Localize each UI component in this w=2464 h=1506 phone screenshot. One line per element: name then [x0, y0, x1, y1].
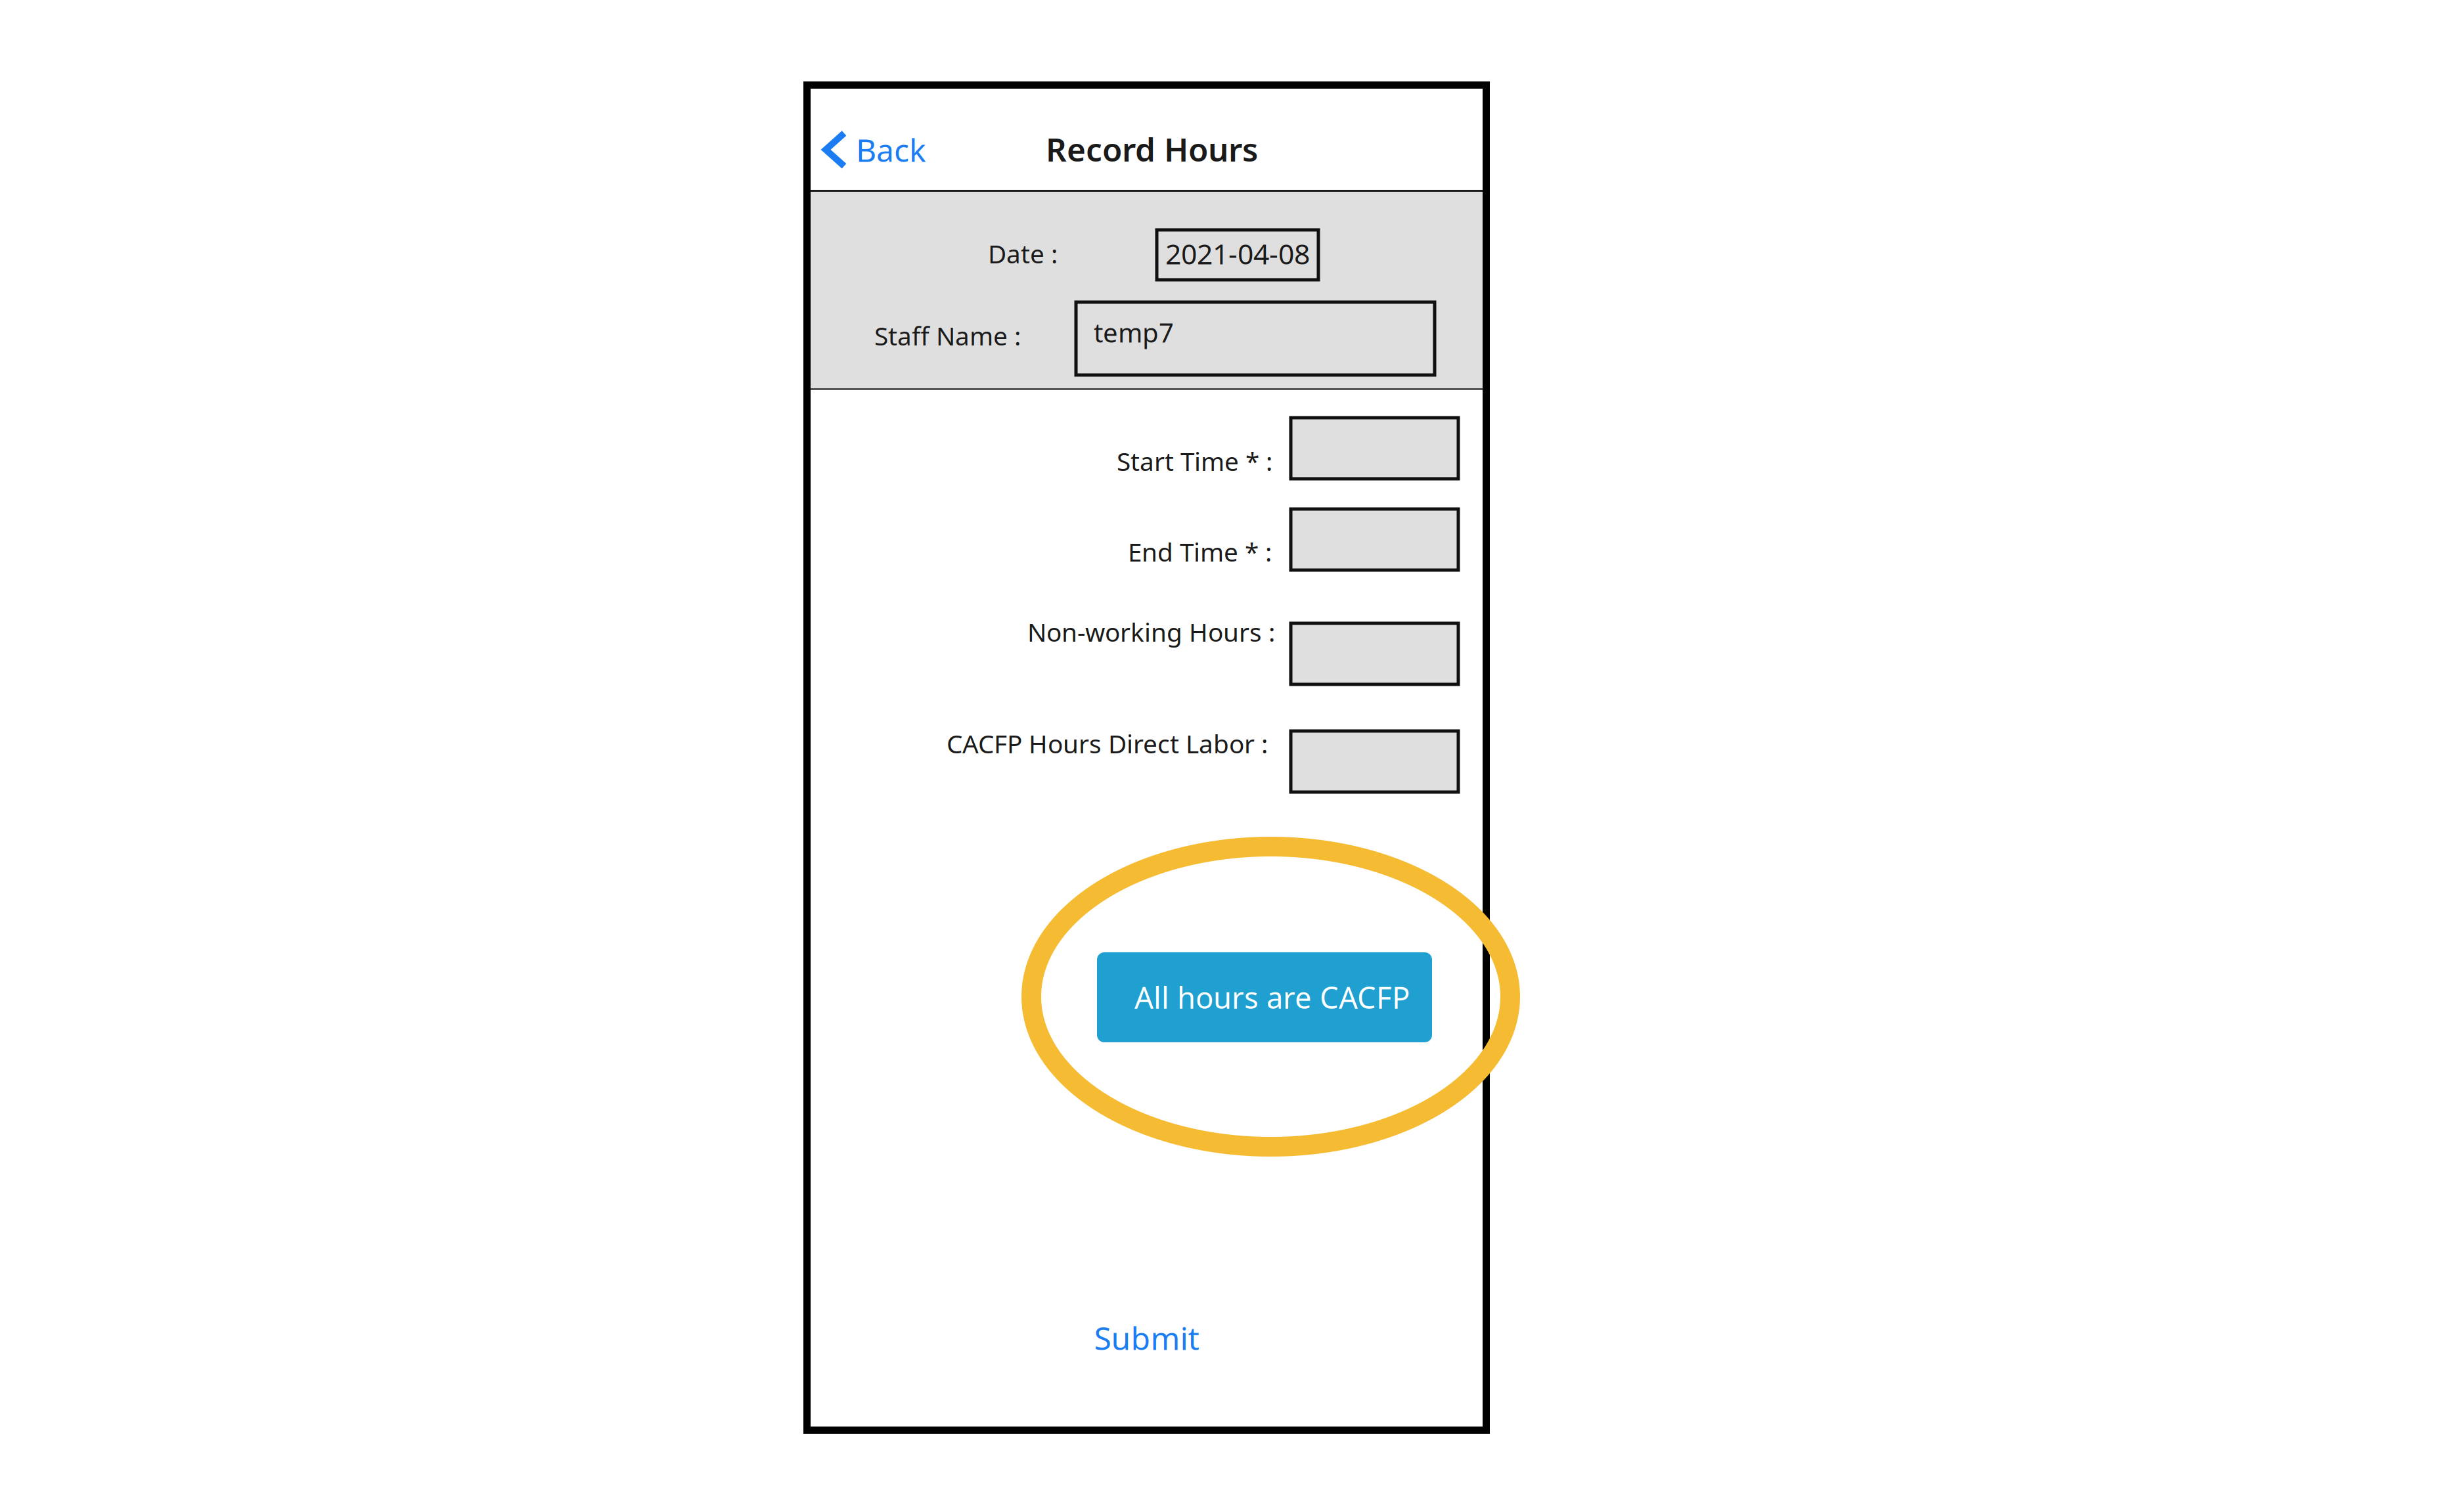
staticText: CACFP Hours Direct Labor :	[947, 727, 1268, 760]
button[interactable]: Non-working Hours :	[1291, 623, 1458, 684]
staticText: temp7	[1094, 315, 1174, 350]
staticText: Submit	[1094, 1317, 1199, 1359]
button[interactable]: Start Time * :	[1291, 418, 1458, 479]
staticText: Record Hours	[1046, 128, 1258, 171]
button[interactable]: All hours are CACFP	[1097, 952, 1432, 1042]
button[interactable]: Submit	[811, 1302, 1483, 1374]
staticText: Start Time * :	[1117, 444, 1272, 478]
staticText: Non-working Hours :	[1027, 615, 1275, 649]
staticText: All hours are CACFP	[1134, 977, 1410, 1017]
staticText: 2021-04-08	[1165, 235, 1310, 272]
button[interactable]: Staff Name	[1076, 302, 1435, 375]
staticText: End Time * :	[1128, 535, 1272, 569]
staticText: Date :	[988, 237, 1058, 270]
staticText: Back	[856, 129, 926, 171]
button[interactable]: End Time * :	[1291, 509, 1458, 570]
staticText: Staff Name :	[874, 319, 1021, 352]
button[interactable]: Back	[811, 116, 943, 184]
button[interactable]: CACFP Hours Direct Labor :	[1291, 731, 1458, 792]
button[interactable]: Date	[1157, 230, 1318, 280]
